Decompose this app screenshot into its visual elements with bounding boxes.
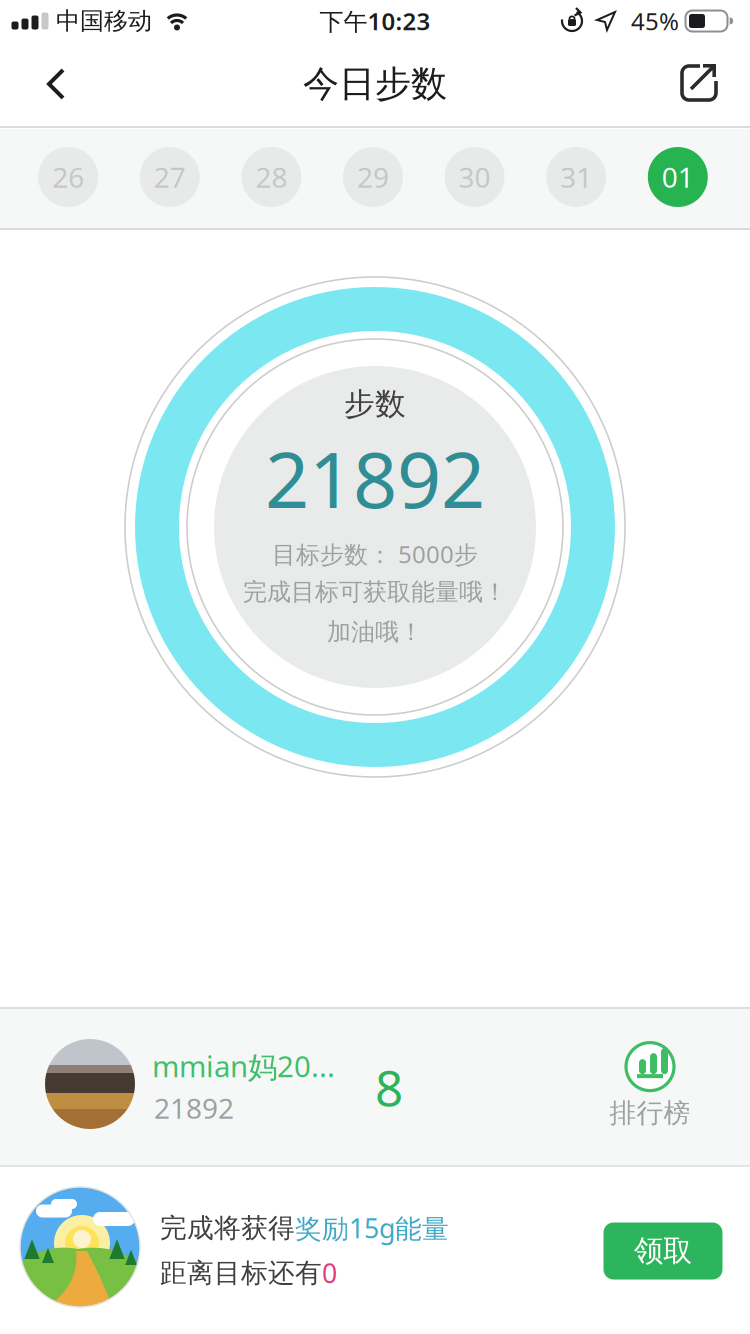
staticText: 中国移动 bbox=[56, 6, 152, 36]
button[interactable]: 29 bbox=[343, 147, 403, 207]
button[interactable]: 领取 bbox=[603, 1222, 722, 1279]
button[interactable]: 30 bbox=[445, 147, 505, 207]
staticText: 8 bbox=[375, 1054, 403, 1120]
button[interactable] bbox=[680, 64, 718, 102]
staticText: 21892 bbox=[154, 1089, 234, 1127]
staticText: 21892 bbox=[265, 427, 485, 529]
staticText: 距离目标还有 bbox=[160, 1257, 322, 1289]
staticText: 完成目标可获取能量哦！ bbox=[243, 577, 507, 607]
button[interactable]: 01 bbox=[648, 147, 708, 207]
staticText: 0 bbox=[322, 1255, 337, 1291]
button[interactable]: 31 bbox=[546, 147, 606, 207]
staticText: 27 bbox=[154, 158, 186, 196]
staticText: 排行榜 bbox=[609, 1097, 690, 1129]
staticText: 下午10:23 bbox=[319, 5, 430, 37]
staticText: 29 bbox=[357, 158, 389, 196]
button[interactable]: 27 bbox=[140, 147, 200, 207]
staticText: 领取 bbox=[634, 1233, 692, 1269]
button[interactable]: 排行榜 bbox=[609, 1043, 690, 1129]
staticText: 完成将获得 bbox=[160, 1212, 295, 1244]
staticText: 目标步数： 5000步 bbox=[272, 538, 478, 570]
staticText: 31 bbox=[560, 158, 592, 196]
staticText: 奖励15g能量 bbox=[295, 1210, 449, 1246]
staticText: 28 bbox=[255, 158, 287, 196]
staticText: 26 bbox=[52, 158, 84, 196]
staticText: 步数 bbox=[344, 385, 406, 423]
staticText: 今日步数 bbox=[303, 62, 447, 106]
staticText: mmian妈20... bbox=[152, 1046, 335, 1085]
staticText: 加油哦！ bbox=[327, 617, 423, 647]
staticText: 01 bbox=[662, 158, 694, 196]
staticText: 30 bbox=[459, 158, 491, 196]
button[interactable]: 28 bbox=[241, 147, 301, 207]
button[interactable] bbox=[47, 68, 67, 100]
button[interactable]: 26 bbox=[38, 147, 98, 207]
staticText: 45% bbox=[631, 5, 679, 37]
